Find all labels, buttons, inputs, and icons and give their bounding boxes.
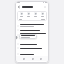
button[interactable]	[15, 28, 49, 32]
button[interactable]	[15, 32, 49, 37]
button[interactable]: More options	[43, 5, 47, 9]
button[interactable]: Toggle 3	[33, 12, 38, 17]
button[interactable]	[15, 23, 49, 28]
button[interactable]: Toggle 4	[40, 12, 45, 17]
button[interactable]	[15, 46, 49, 50]
button[interactable]: Nav item 1	[22, 57, 25, 60]
button[interactable]: Toggle 1	[19, 12, 24, 17]
button[interactable]	[15, 52, 49, 56]
button[interactable]	[19, 34, 37, 39]
button[interactable]: Back	[17, 5, 21, 9]
button[interactable]: Toggle 2	[26, 12, 31, 17]
button[interactable]: Nav item 2	[31, 57, 34, 60]
button[interactable]: Nav item 3	[39, 57, 42, 60]
button[interactable]	[15, 42, 49, 46]
